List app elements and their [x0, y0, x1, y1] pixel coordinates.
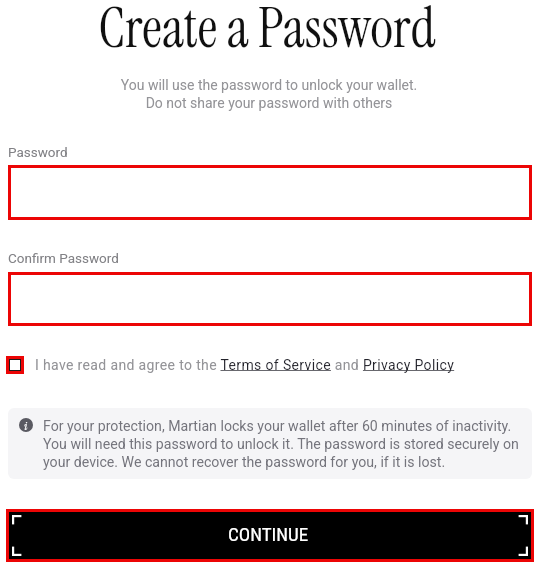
staticText: CONTINUE: [228, 523, 309, 545]
staticText: I have read and agree to the Terms of Se…: [35, 357, 455, 373]
staticText: Confirm Password: [8, 250, 119, 266]
staticText: Create a Password: [0, 0, 537, 65]
button[interactable]: Confirm password input field: [8, 272, 532, 326]
staticText: You will use the password to unlock your…: [0, 77, 539, 112]
button[interactable]: Password input field: [8, 165, 532, 220]
staticText: Password: [8, 144, 68, 160]
other: Information: [19, 418, 33, 432]
button[interactable]: CONTINUE: [6, 509, 534, 562]
button[interactable]: Accept terms checkbox: [6, 356, 24, 374]
staticText: For your protection, Martian locks your …: [43, 418, 523, 471]
button[interactable]: I have read and agree to the Terms of Se…: [35, 357, 455, 373]
staticText: i: [24, 418, 28, 432]
